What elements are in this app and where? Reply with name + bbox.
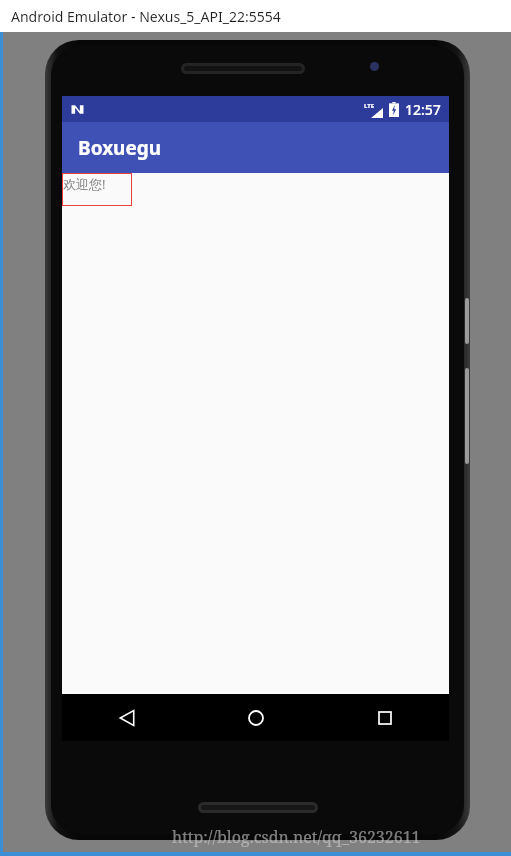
staticText: Android Emulator - Nexus_5_API_22:5554 — [11, 7, 281, 26]
staticText: LTE — [364, 102, 375, 110]
button[interactable]: Home — [191, 694, 320, 741]
staticText: http://blog.csdn.net/qq_36232611 — [172, 826, 421, 848]
staticText: 欢迎您! — [63, 175, 106, 193]
button[interactable]: Back — [62, 694, 191, 741]
button[interactable]: Recent apps — [320, 694, 449, 741]
staticText: Boxuegu — [78, 135, 162, 161]
staticText: 12:57 — [405, 100, 441, 119]
button[interactable]: 欢迎您! — [62, 173, 132, 206]
